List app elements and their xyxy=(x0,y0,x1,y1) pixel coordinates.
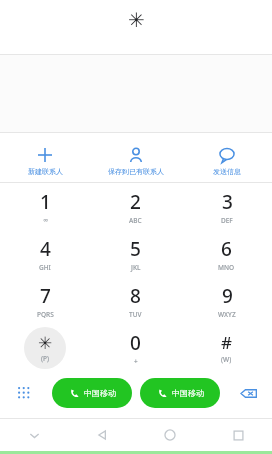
staticText: 中国移动 xyxy=(84,388,116,398)
button[interactable]: 保存到已有联系人 xyxy=(90,140,181,176)
staticText: 8 xyxy=(130,283,141,309)
staticText: MNO xyxy=(218,263,235,272)
staticText: 5 xyxy=(130,236,141,262)
staticText: 6 xyxy=(221,236,232,262)
staticText: 2 xyxy=(130,189,141,215)
staticText: 3 xyxy=(222,189,233,215)
button[interactable]: Hide keyboard xyxy=(0,419,68,451)
staticText: 发送信息 xyxy=(213,167,241,176)
button[interactable]: 0 xyxy=(90,324,181,371)
staticText: 保存到已有联系人 xyxy=(108,167,164,176)
staticText: # xyxy=(221,331,232,354)
button[interactable]: Backspace xyxy=(224,371,272,415)
button[interactable]: 1 xyxy=(0,183,90,230)
staticText: ∞ xyxy=(43,216,49,224)
button[interactable]: 中国移动 xyxy=(52,378,132,408)
staticText: TUV xyxy=(129,310,142,319)
button[interactable]: 3 xyxy=(181,183,272,230)
button[interactable]: 4 xyxy=(0,230,90,277)
staticText: DEF xyxy=(221,216,233,225)
staticText: 4 xyxy=(40,236,51,262)
button[interactable]: Keypad xyxy=(0,371,48,415)
button[interactable]: 8 xyxy=(90,277,181,324)
staticText: ✳ xyxy=(128,8,145,31)
button[interactable]: 7 xyxy=(0,277,90,324)
button[interactable]: Recents xyxy=(204,419,272,451)
staticText: 新建联系人 xyxy=(28,167,63,176)
button[interactable]: Back xyxy=(68,419,136,451)
staticText: WXYZ xyxy=(218,310,236,319)
staticText: 0 xyxy=(130,330,141,356)
staticText: JKL xyxy=(131,263,141,272)
staticText: GHI xyxy=(39,263,51,272)
staticText: PQRS xyxy=(37,310,54,319)
button[interactable]: 发送信息 xyxy=(181,140,272,176)
staticText: ABC xyxy=(129,216,142,225)
button[interactable]: 5 xyxy=(90,230,181,277)
staticText: 1 xyxy=(40,189,51,215)
staticText: 7 xyxy=(40,283,51,309)
staticText: (P) xyxy=(41,354,50,363)
staticText: (W) xyxy=(221,355,232,364)
button[interactable]: 6 xyxy=(181,230,272,277)
staticText: 9 xyxy=(222,283,233,309)
staticText: + xyxy=(134,357,138,366)
button[interactable]: 新建联系人 xyxy=(0,140,90,176)
button[interactable]: 中国移动 xyxy=(140,378,220,408)
button[interactable]: # xyxy=(181,324,272,371)
staticText: 中国移动 xyxy=(172,388,204,398)
button[interactable]: 9 xyxy=(181,277,272,324)
button[interactable]: ✳ xyxy=(0,324,90,371)
button[interactable]: 2 xyxy=(90,183,181,230)
button[interactable]: Home xyxy=(136,419,204,451)
staticText: ✳ xyxy=(38,333,53,353)
